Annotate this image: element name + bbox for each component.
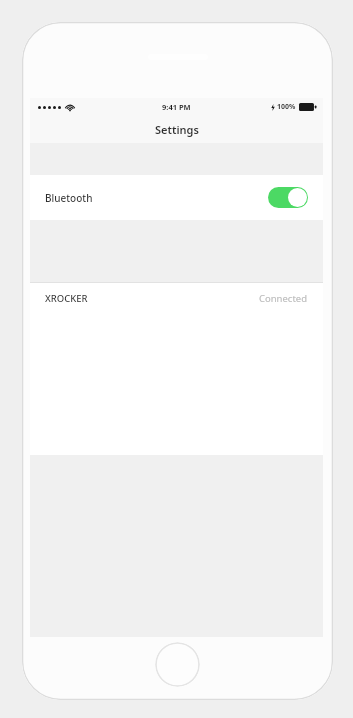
staticText: Bluetooth	[45, 191, 93, 205]
staticText: Connected	[259, 292, 308, 305]
button[interactable]: Home	[155, 642, 200, 687]
button[interactable]: Bluetooth on	[268, 187, 308, 208]
staticText: XROCKER	[45, 292, 88, 305]
button[interactable]: XROCKER	[30, 283, 323, 313]
staticText: 100%	[277, 102, 296, 112]
staticText: Settings	[155, 122, 199, 137]
button[interactable]: Bluetooth	[30, 175, 323, 220]
staticText: 9:41 PM	[162, 102, 191, 112]
